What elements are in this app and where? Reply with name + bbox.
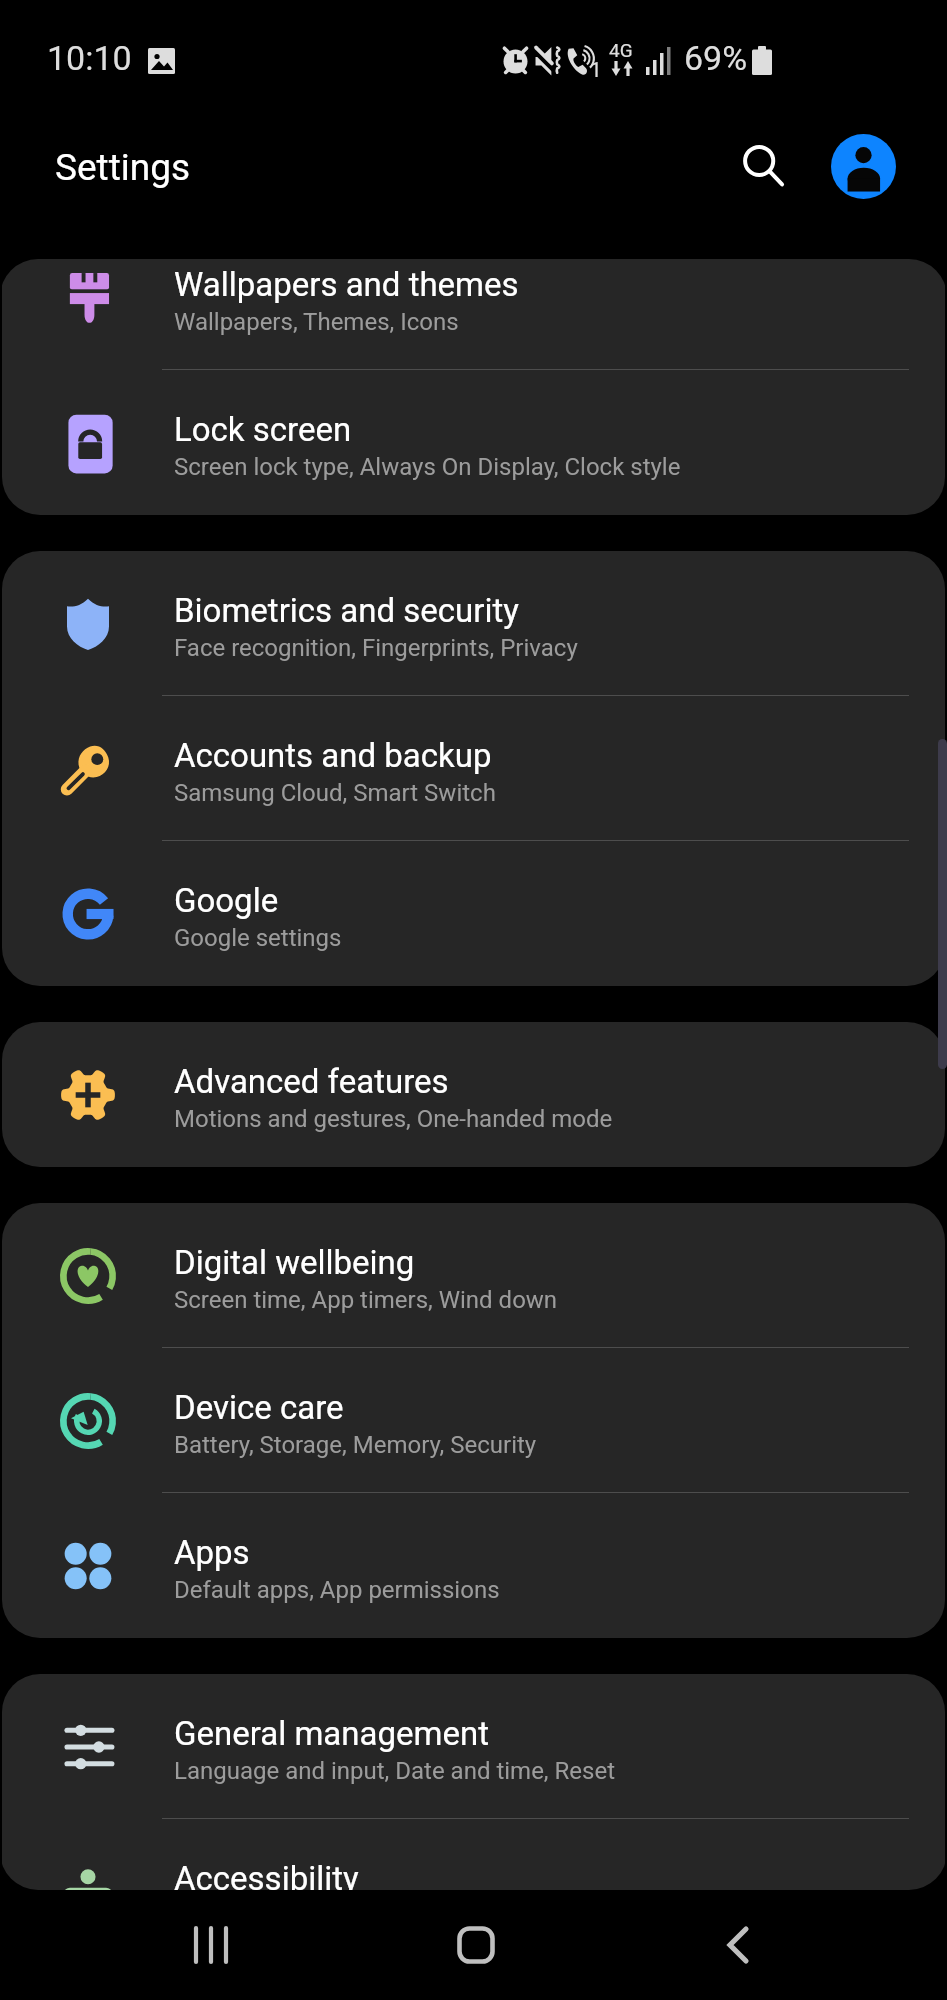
button[interactable]: Home <box>406 1890 546 2000</box>
staticText: Face recognition, Fingerprints, Privacy <box>174 634 578 662</box>
button[interactable]: Back <box>670 1890 810 2000</box>
staticText: Default apps, App permissions <box>174 1576 500 1604</box>
staticText: Apps <box>174 1533 250 1572</box>
button[interactable]: Device care <box>2 1348 945 1493</box>
staticText: 10:10 <box>47 38 132 78</box>
staticText: Device care <box>174 1388 344 1427</box>
staticText: Motions and gestures, One-handed mode <box>174 1105 613 1133</box>
staticText: Google settings <box>174 924 342 952</box>
button[interactable]: Biometrics and security <box>2 551 945 696</box>
staticText: Screen time, App timers, Wind down <box>174 1286 558 1314</box>
staticText: Lock screen <box>174 410 352 449</box>
staticText: 1 <box>590 58 602 83</box>
staticText: Settings <box>55 146 191 189</box>
staticText: Advanced features <box>174 1062 449 1101</box>
staticText: Digital wellbeing <box>174 1243 415 1282</box>
button[interactable]: Accounts and backup <box>2 696 945 841</box>
staticText: Biometrics and security <box>174 591 519 630</box>
staticText: Samsung Cloud, Smart Switch <box>174 779 496 807</box>
button[interactable]: Digital wellbeing <box>2 1203 945 1348</box>
button[interactable]: Recent apps <box>141 1890 281 2000</box>
button[interactable]: Google <box>2 841 945 986</box>
staticText: Google <box>174 881 279 920</box>
button[interactable]: Search <box>726 129 802 205</box>
staticText: General management <box>174 1714 489 1753</box>
button[interactable]: Account <box>831 134 896 199</box>
button[interactable]: Accessibility <box>2 1819 945 1890</box>
button[interactable]: Wallpapers and themes <box>2 259 945 370</box>
staticText: Screen lock type, Always On Display, Clo… <box>174 453 681 481</box>
staticText: 4G <box>609 39 633 61</box>
staticText: Wallpapers and themes <box>174 265 519 304</box>
staticText: Wallpapers, Themes, Icons <box>174 308 459 336</box>
button[interactable]: Advanced features <box>2 1022 945 1167</box>
staticText: Language and input, Date and time, Reset <box>174 1757 616 1785</box>
staticText: Accounts and backup <box>174 736 492 775</box>
staticText: 69% <box>684 38 748 78</box>
staticText: Battery, Storage, Memory, Security <box>174 1431 537 1459</box>
button[interactable]: General management <box>2 1674 945 1819</box>
button[interactable]: Apps <box>2 1493 945 1638</box>
button[interactable]: Lock screen <box>2 370 945 515</box>
staticText: Accessibility <box>174 1859 359 1890</box>
